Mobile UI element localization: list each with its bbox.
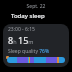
staticText: Sept. 22 — [0, 3, 72, 10]
button[interactable]: 23:00 - 6:15 — [3, 24, 69, 67]
staticText: 23:00 - 6:15 — [8, 26, 35, 33]
staticText: 8h 15m — [8, 34, 34, 46]
staticText: Sleep quality 76% — [8, 48, 50, 55]
staticText: Today sleep — [11, 12, 45, 20]
